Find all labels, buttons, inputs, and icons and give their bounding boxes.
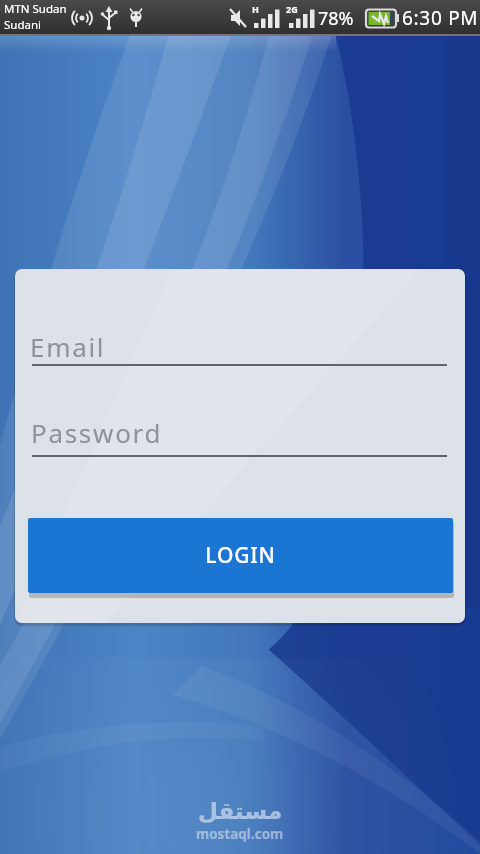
- staticText: مستقل: [198, 798, 283, 825]
- staticText: MTN Sudan: [4, 1, 67, 17]
- staticText: 6:30 PM: [402, 5, 479, 31]
- staticText: Email: [30, 329, 106, 364]
- staticText: 2G: [286, 3, 298, 15]
- staticText: Password: [31, 415, 163, 450]
- staticText: Sudani: [4, 17, 42, 33]
- staticText: 78%: [318, 6, 354, 31]
- button[interactable]: LOGIN: [28, 518, 453, 593]
- staticText: mostaql.com: [196, 825, 284, 843]
- staticText: H: [252, 3, 259, 15]
- staticText: LOGIN: [205, 541, 276, 570]
- button[interactable]: [30, 317, 449, 367]
- button[interactable]: [30, 405, 449, 457]
